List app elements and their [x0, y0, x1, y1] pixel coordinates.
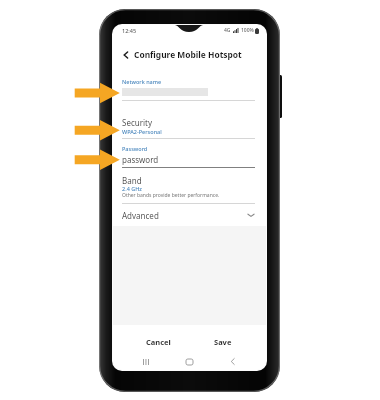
button[interactable]: Home: [179, 353, 199, 370]
staticText: password: [122, 154, 159, 165]
button[interactable]: Network name: [113, 78, 266, 101]
staticText: Cancel: [146, 337, 171, 347]
button[interactable]: Band: [113, 175, 266, 204]
staticText: Band: [122, 175, 142, 186]
staticText: 4G: [224, 27, 231, 34]
staticText: Advanced: [122, 210, 159, 221]
button[interactable]: Save: [206, 333, 239, 351]
staticText: Network name: [122, 78, 162, 85]
staticText: Configure Mobile Hotspot: [134, 49, 242, 60]
staticText: 2.4 GHz: [122, 185, 142, 192]
button[interactable]: Security: [113, 117, 266, 139]
staticText: WPA2-Personal: [122, 128, 162, 135]
button[interactable]: Advanced: [113, 204, 266, 226]
button[interactable]: Recent apps: [136, 353, 156, 370]
staticText: 12:45: [122, 27, 137, 34]
button[interactable]: Back: [222, 353, 242, 370]
button[interactable]: Password: [113, 145, 266, 168]
staticText: Other bands provide better performance.: [122, 192, 220, 199]
staticText: Save: [214, 337, 232, 347]
button[interactable]: Back: [119, 48, 132, 61]
staticText: Security: [122, 117, 153, 128]
staticText: 100%: [241, 27, 254, 34]
button[interactable]: Cancel: [140, 333, 176, 351]
staticText: Password: [122, 145, 148, 152]
